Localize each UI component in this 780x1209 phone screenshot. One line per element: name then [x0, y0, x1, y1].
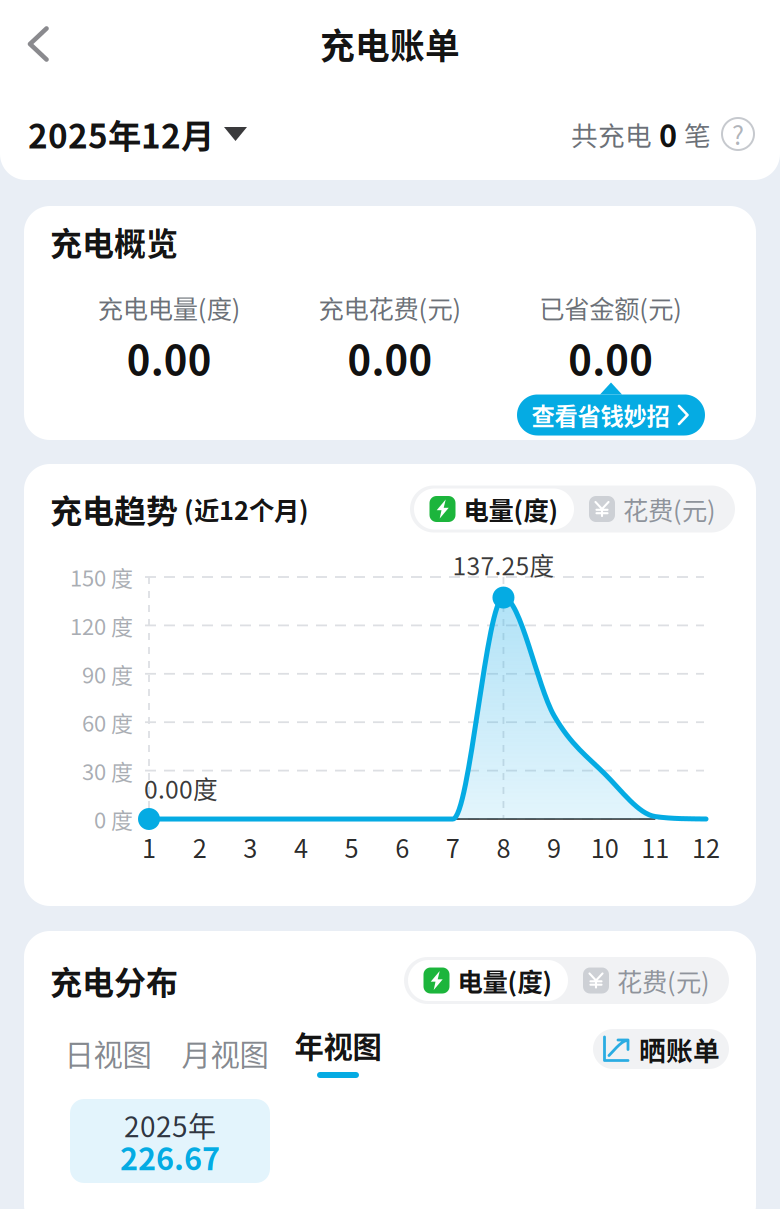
staticText: 月视图 — [181, 1032, 268, 1074]
staticText: 0 — [652, 112, 684, 156]
staticText: 11 — [641, 829, 669, 865]
staticText: 充电概览 — [50, 218, 178, 265]
staticText: 6 — [395, 829, 409, 865]
staticText: 电量(度) — [457, 962, 552, 999]
staticText: 充电账单 — [320, 19, 460, 69]
staticText: 8 — [496, 829, 510, 865]
staticText: ? — [732, 116, 744, 152]
staticText: 30 度 — [82, 755, 133, 787]
staticText: 4 — [294, 829, 308, 865]
button[interactable]: 查看省钱妙招 — [517, 382, 705, 435]
staticText: 9 — [547, 829, 561, 865]
staticText: 年视图 — [294, 1024, 381, 1066]
staticText: 1 — [142, 829, 156, 865]
button[interactable]: Help — [711, 118, 754, 150]
staticText: 电量(度) — [463, 491, 558, 527]
staticText: 226.67 — [120, 1135, 220, 1179]
staticText: 12 — [692, 829, 720, 865]
button[interactable]: 2025年 — [70, 1099, 270, 1183]
button[interactable]: 晒账单 — [593, 1029, 729, 1069]
staticText: 充电趋势 — [50, 486, 178, 532]
button[interactable]: 年视图 — [288, 1025, 388, 1081]
staticText: 查看省钱妙招 — [531, 398, 669, 432]
staticText: 5 — [344, 829, 358, 865]
staticText: 日视图 — [64, 1032, 151, 1074]
button[interactable]: 花费(元) — [574, 488, 731, 529]
staticText: 花费(元) — [623, 491, 716, 527]
button[interactable]: 电量(度) — [408, 960, 568, 1001]
staticText: 0.00度 — [144, 770, 218, 806]
staticText: 已省金额(元) — [539, 289, 682, 326]
staticText: 0.00 — [127, 328, 212, 386]
staticText: 0 度 — [94, 803, 133, 835]
staticText: 花费(元) — [617, 962, 710, 999]
staticText: 共充电 — [571, 115, 652, 153]
staticText: 7 — [446, 829, 460, 865]
button[interactable]: 花费(元) — [568, 960, 725, 1001]
staticText: 90 度 — [82, 658, 133, 690]
staticText: 2 — [193, 829, 207, 865]
staticText: 充电电量(度) — [98, 289, 241, 326]
staticText: 150 度 — [70, 561, 133, 593]
staticText: 137.25度 — [452, 547, 554, 582]
staticText: 晒账单 — [639, 1030, 720, 1068]
button[interactable]: 日视图 — [58, 1031, 158, 1075]
staticText: 3 — [243, 829, 257, 865]
staticText: 充电分布 — [50, 957, 178, 1004]
staticText: 10 — [591, 829, 619, 865]
button[interactable]: 2025年12月 — [0, 102, 261, 166]
staticText: 2025年 — [124, 1105, 216, 1145]
staticText: 60 度 — [82, 706, 133, 738]
staticText: (近12个月) — [178, 491, 309, 527]
button[interactable]: 电量(度) — [414, 488, 574, 529]
staticText: 0.00 — [568, 328, 653, 386]
button[interactable]: 月视图 — [175, 1031, 275, 1075]
staticText: 充电花费(元) — [318, 289, 461, 326]
staticText: 0.00 — [347, 328, 432, 386]
button[interactable]: Back — [0, 8, 76, 80]
staticText: 2025年12月 — [28, 110, 214, 158]
staticText: 120 度 — [70, 609, 133, 641]
staticText: 笔 — [684, 115, 711, 153]
